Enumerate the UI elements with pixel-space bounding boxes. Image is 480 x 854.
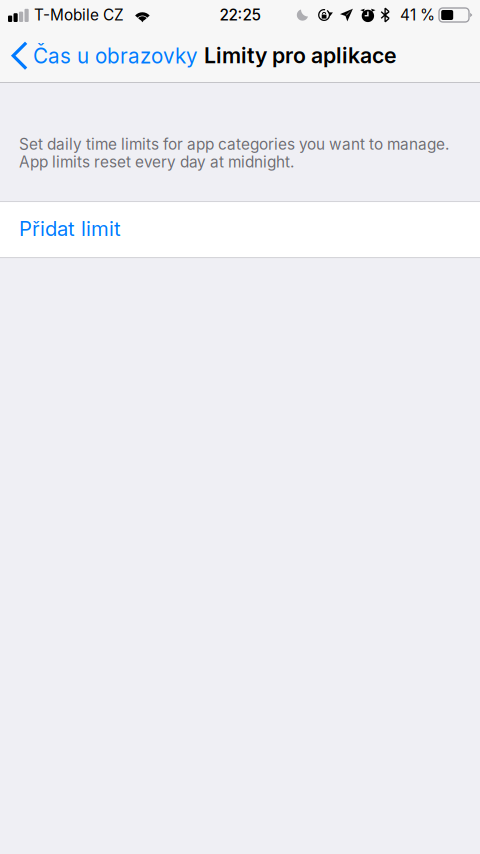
button[interactable]: Čas u obrazovky — [0, 31, 206, 81]
staticText: T-Mobile CZ — [34, 6, 124, 24]
staticText: Čas u obrazovky — [33, 43, 198, 68]
staticText: Přidat limit — [19, 216, 121, 241]
staticText: 41 % — [400, 6, 435, 24]
staticText: 22:25 — [219, 6, 260, 24]
button[interactable]: Přidat limit — [0, 202, 480, 257]
staticText: Set daily time limits for app categories… — [19, 135, 449, 154]
staticText: Limity pro aplikace — [204, 43, 397, 68]
staticText: App limits reset every day at midnight. — [19, 153, 294, 171]
